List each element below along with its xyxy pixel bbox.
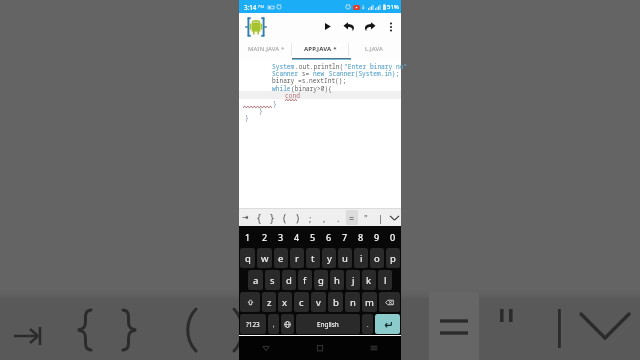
button[interactable]: Shift xyxy=(240,292,260,312)
button[interactable]: w xyxy=(257,248,272,268)
button[interactable]: o xyxy=(370,248,384,268)
button[interactable]: Backspace xyxy=(379,292,400,312)
button[interactable]: e xyxy=(274,248,288,268)
staticText: t xyxy=(311,252,315,265)
button[interactable]: ⇥ xyxy=(240,210,251,225)
staticText: i xyxy=(360,252,363,265)
button[interactable]: More options xyxy=(380,13,401,40)
button[interactable]: Back xyxy=(239,336,293,360)
staticText: . xyxy=(337,212,340,224)
staticText: } xyxy=(273,99,277,107)
button[interactable]: 1 xyxy=(239,226,256,247)
staticText: System xyxy=(272,62,295,70)
button[interactable]: Hide toolbar xyxy=(387,208,401,227)
button[interactable]: n xyxy=(345,292,360,312)
staticText: " xyxy=(364,212,368,224)
button[interactable]: ) xyxy=(292,210,303,225)
button[interactable]: u xyxy=(338,248,352,268)
button[interactable]: , xyxy=(268,314,279,334)
button[interactable]: f xyxy=(298,270,312,290)
button[interactable]: t xyxy=(306,248,320,268)
button[interactable]: Undo xyxy=(338,13,359,40)
staticText: 3 xyxy=(278,231,284,243)
button[interactable]: a xyxy=(248,270,263,290)
staticText: 0 xyxy=(390,231,396,243)
button[interactable]: p xyxy=(386,248,400,268)
staticText: 9 xyxy=(374,231,380,243)
staticText: Scanner(System.in); xyxy=(325,69,400,77)
button[interactable]: 8 xyxy=(353,226,369,247)
staticText: 1 xyxy=(245,231,251,243)
button[interactable]: 2 xyxy=(256,226,273,247)
staticText: while xyxy=(272,84,291,92)
staticText: 2 xyxy=(262,231,268,243)
button[interactable]: v xyxy=(311,292,326,312)
button[interactable]: y xyxy=(322,248,336,268)
button[interactable]: Enter xyxy=(375,314,400,334)
button[interactable]: s xyxy=(265,270,280,290)
button[interactable]: h xyxy=(330,270,344,290)
staticText: x xyxy=(282,296,288,309)
button[interactable]: , xyxy=(318,210,330,225)
button[interactable]: z xyxy=(262,292,276,312)
button[interactable]: English xyxy=(296,314,360,334)
button[interactable]: 6 xyxy=(321,226,337,247)
staticText: new xyxy=(313,69,325,77)
button[interactable]: ( xyxy=(279,210,290,225)
button[interactable]: APP.JAVA * xyxy=(293,40,347,60)
button[interactable]: " xyxy=(360,210,372,225)
button[interactable]: q xyxy=(240,248,255,268)
staticText: APP.JAVA * xyxy=(304,45,337,53)
button[interactable]: . xyxy=(362,314,373,334)
staticText: 51% xyxy=(387,3,399,11)
button[interactable]: 0 xyxy=(385,226,401,247)
button[interactable]: AIDE xyxy=(244,15,268,39)
button[interactable]: Run xyxy=(317,13,338,40)
button[interactable]: Home xyxy=(293,336,347,360)
staticText: f xyxy=(303,274,307,287)
button[interactable]: ; xyxy=(305,210,316,225)
button[interactable]: { xyxy=(253,210,264,225)
button[interactable]: ?123 xyxy=(240,314,266,334)
button[interactable]: 3 xyxy=(273,226,289,247)
button[interactable]: 4 xyxy=(289,226,305,247)
staticText: | xyxy=(378,212,383,224)
button[interactable]: 9 xyxy=(369,226,385,247)
button[interactable]: x xyxy=(278,292,292,312)
staticText: b xyxy=(333,296,339,309)
button[interactable]: Recent apps xyxy=(347,336,401,360)
staticText: { xyxy=(257,211,261,225)
staticText: .out.println( xyxy=(295,62,344,70)
button[interactable]: Change language xyxy=(281,314,294,334)
staticText: , xyxy=(323,212,326,224)
button[interactable]: | xyxy=(374,210,386,225)
button[interactable]: } xyxy=(266,210,277,225)
staticText: j xyxy=(352,274,355,287)
staticText: p xyxy=(390,252,396,265)
button[interactable]: L.JAVA xyxy=(347,40,401,60)
staticText: 3:14 xyxy=(244,3,257,11)
button[interactable]: k xyxy=(362,270,376,290)
button[interactable]: m xyxy=(362,292,377,312)
staticText: s= xyxy=(298,69,313,77)
button[interactable]: g xyxy=(314,270,328,290)
button[interactable]: 7 xyxy=(337,226,353,247)
staticText: q xyxy=(245,252,251,265)
button[interactable]: Redo xyxy=(359,13,380,40)
button[interactable]: i xyxy=(354,248,368,268)
button[interactable]: d xyxy=(282,270,296,290)
button[interactable]: j xyxy=(346,270,360,290)
button[interactable]: b xyxy=(328,292,343,312)
button[interactable]: MAIN.JAVA * xyxy=(239,40,293,60)
button[interactable]: l xyxy=(378,270,392,290)
button[interactable]: = xyxy=(346,210,358,225)
staticText: PM xyxy=(258,4,265,10)
button[interactable]: r xyxy=(290,248,304,268)
staticText: , xyxy=(273,321,275,328)
staticText: } xyxy=(270,211,274,225)
button[interactable]: c xyxy=(294,292,309,312)
button[interactable]: . xyxy=(332,210,344,225)
staticText: 5 xyxy=(310,231,316,243)
button[interactable]: 5 xyxy=(305,226,321,247)
staticText: cond xyxy=(285,91,300,99)
